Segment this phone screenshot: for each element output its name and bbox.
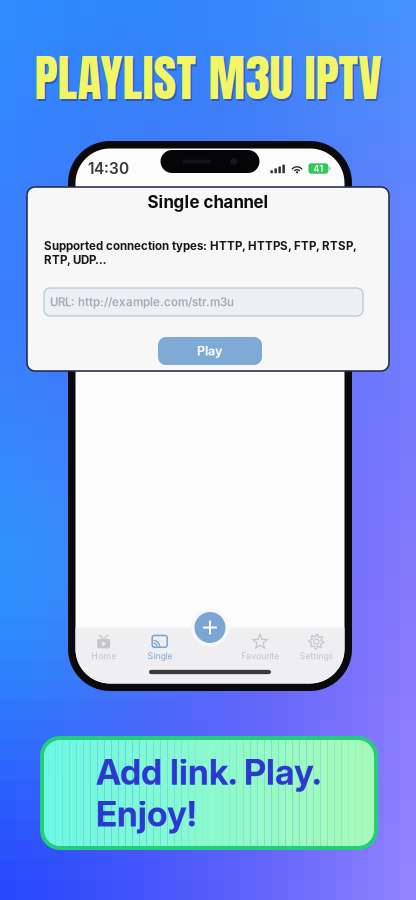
staticText: PLAYLIST M3U IPTV xyxy=(34,41,381,115)
staticText: Single channel xyxy=(153,189,267,208)
staticText: Play xyxy=(197,343,223,359)
staticText: Favourite xyxy=(241,651,279,661)
button[interactable]: Single xyxy=(132,627,188,667)
button[interactable]: Favourite xyxy=(232,627,288,667)
staticText: Home xyxy=(91,651,116,661)
staticText: Supported connection types: HTTP, HTTPS,… xyxy=(44,239,356,267)
staticText: URL: http://example.com/str.m3u xyxy=(50,295,234,309)
button[interactable]: Home xyxy=(75,627,132,667)
staticText: Settings xyxy=(299,651,333,661)
staticText: 14:30 xyxy=(88,159,129,178)
staticText: Add link. Play. Enjoy! xyxy=(96,751,322,835)
staticText: Single xyxy=(147,651,172,661)
button[interactable]: Settings xyxy=(288,627,344,667)
staticText: PLAYLIST M3U IPTV xyxy=(36,43,383,117)
button[interactable]: Add playlist xyxy=(190,607,230,647)
button[interactable]: Play xyxy=(158,337,262,365)
staticText: 41 xyxy=(313,163,323,174)
staticText: Single channel xyxy=(147,192,268,212)
